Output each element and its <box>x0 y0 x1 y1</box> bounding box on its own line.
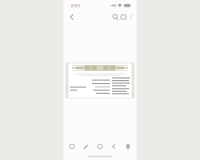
button[interactable]: Markup <box>79 140 93 153</box>
button[interactable]: More <box>127 11 134 23</box>
button[interactable]: Share <box>107 140 121 153</box>
staticText: 9:41 <box>70 2 80 9</box>
button[interactable]: Layout <box>119 11 127 23</box>
button[interactable]: Back <box>66 11 78 22</box>
button[interactable]: Search <box>111 11 119 23</box>
button[interactable]: Rotate <box>93 140 107 153</box>
button[interactable]: Info <box>65 140 79 153</box>
button[interactable]: Delete <box>121 140 135 153</box>
